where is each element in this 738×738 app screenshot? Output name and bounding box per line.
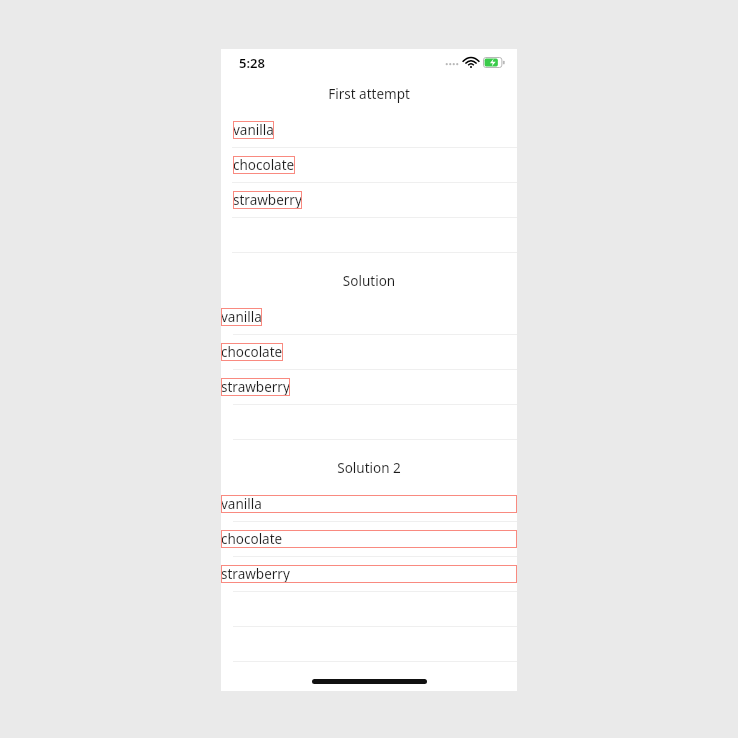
- button[interactable]: vanilla: [221, 113, 517, 148]
- staticText: strawberry: [221, 565, 290, 583]
- button[interactable]: chocolate: [221, 335, 517, 370]
- staticText: chocolate: [221, 343, 283, 361]
- staticText: Solution: [221, 272, 517, 290]
- staticText: 5:28: [239, 54, 265, 72]
- staticText: strawberry: [221, 378, 290, 396]
- button[interactable]: chocolate: [221, 148, 517, 183]
- staticText: Solution 2: [221, 459, 517, 477]
- staticText: chocolate: [233, 156, 295, 174]
- button[interactable]: strawberry: [221, 557, 517, 592]
- staticText: chocolate: [221, 530, 283, 548]
- staticText: vanilla: [233, 121, 274, 139]
- staticText: vanilla: [221, 495, 262, 513]
- staticText: vanilla: [221, 308, 262, 326]
- staticText: First attempt: [221, 85, 517, 103]
- button[interactable]: strawberry: [221, 370, 517, 405]
- button[interactable]: strawberry: [221, 183, 517, 218]
- button[interactable]: vanilla: [221, 487, 517, 522]
- button[interactable]: chocolate: [221, 522, 517, 557]
- button[interactable]: vanilla: [221, 300, 517, 335]
- staticText: strawberry: [233, 191, 302, 209]
